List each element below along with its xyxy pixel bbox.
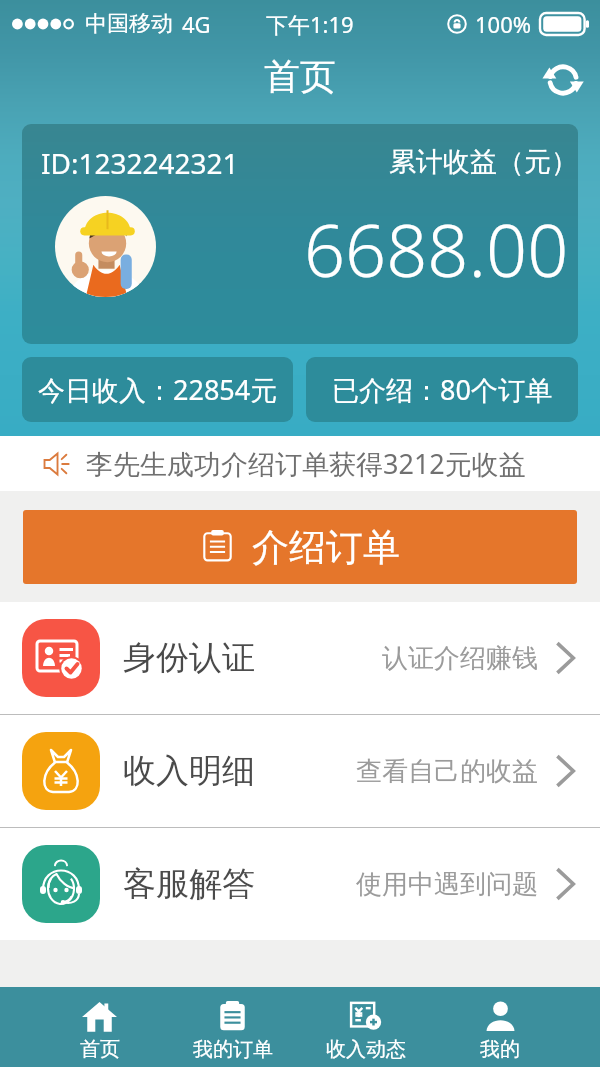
button[interactable]: 今日收入：22854元 xyxy=(22,357,293,422)
button[interactable]: 收入动态 xyxy=(299,987,433,1067)
staticText: 今日收入：22854元 xyxy=(38,371,278,408)
staticText: 下午1:19 xyxy=(266,9,354,39)
staticText: 首页 xyxy=(264,54,336,99)
button[interactable]: 收入明细 xyxy=(0,715,600,827)
staticText: 介绍订单 xyxy=(252,524,400,571)
staticText: 中国移动 xyxy=(85,10,173,38)
staticText: 首页 xyxy=(80,1037,120,1062)
button[interactable]: 我的订单 xyxy=(166,987,299,1067)
button[interactable]: 我的 xyxy=(433,987,567,1067)
button[interactable]: 身份认证 xyxy=(0,602,600,714)
staticText: ID:1232242321 xyxy=(41,144,239,182)
staticText: 认证介绍赚钱 xyxy=(382,642,538,675)
staticText: 身份认证 xyxy=(123,637,255,679)
staticText: 累计收益（元） xyxy=(389,145,578,179)
button[interactable]: 已介绍：80个订单 xyxy=(306,357,578,422)
staticText: 收入动态 xyxy=(326,1037,406,1062)
staticText: 100% xyxy=(475,9,532,39)
button[interactable]: 介绍订单 xyxy=(23,510,577,584)
staticText: 6688.00 xyxy=(304,200,569,298)
staticText: 客服解答 xyxy=(123,863,255,905)
staticText: 4G xyxy=(182,9,211,39)
button[interactable]: 首页 xyxy=(33,987,166,1067)
staticText: 李先生成功介绍订单获得3212元收益 xyxy=(86,445,526,482)
staticText: 我的订单 xyxy=(193,1037,273,1062)
staticText: 使用中遇到问题 xyxy=(356,868,538,901)
button[interactable]: ID:1232242321 xyxy=(22,124,578,344)
staticText: 收入明细 xyxy=(123,750,255,792)
staticText: 查看自己的收益 xyxy=(356,755,538,788)
staticText: 已介绍：80个订单 xyxy=(332,371,552,408)
button[interactable]: 李先生成功介绍订单获得3212元收益 xyxy=(0,436,600,491)
staticText: 我的 xyxy=(480,1037,520,1062)
button[interactable]: 客服解答 xyxy=(0,828,600,940)
button[interactable]: Refresh xyxy=(534,54,586,106)
